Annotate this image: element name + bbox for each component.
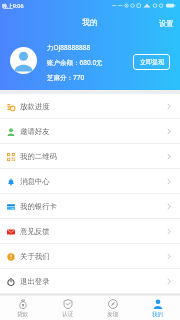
button[interactable]: 贷款	[0, 296, 45, 320]
button[interactable]: 消息中心	[0, 169, 180, 194]
button[interactable]: 发现	[90, 296, 135, 320]
staticText: 设置	[159, 19, 174, 28]
staticText: 关于我们	[20, 252, 50, 261]
staticText: 认证	[62, 311, 74, 318]
staticText: 消息中心	[20, 177, 50, 186]
button[interactable]: 意见反馈	[0, 219, 180, 244]
staticText: 放款进度	[20, 102, 50, 111]
button[interactable]: 设置	[153, 15, 180, 32]
button[interactable]: 我的	[135, 296, 180, 320]
button[interactable]: 认证	[45, 296, 90, 320]
button[interactable]: 放款进度	[0, 94, 180, 119]
staticText: 意见反馈	[20, 227, 50, 236]
staticText: 退出登录	[20, 277, 50, 286]
button[interactable]: 我的二维码	[0, 144, 180, 169]
staticText: 账户余额：680.0元	[47, 58, 103, 67]
staticText: 我的	[82, 17, 98, 27]
staticText: 晚上9:06	[2, 2, 24, 9]
staticText: 贷款	[17, 311, 29, 318]
staticText: 我的	[152, 311, 164, 318]
button[interactable]: 邀请好友	[0, 119, 180, 144]
button[interactable]: 立即提现	[133, 54, 170, 70]
staticText: 邀请好友	[20, 127, 50, 136]
button[interactable]: 关于我们	[0, 244, 180, 269]
staticText: 我的银行卡	[20, 202, 57, 211]
staticText: 我的二维码	[20, 152, 57, 161]
button[interactable]: 我的银行卡	[0, 194, 180, 219]
staticText: 立即提现	[140, 58, 164, 66]
button[interactable]: 退出登录	[0, 269, 180, 294]
staticText: 力OJ88888888	[47, 43, 91, 52]
staticText: 发现	[107, 311, 119, 318]
staticText: 芝麻分：770	[47, 73, 85, 82]
